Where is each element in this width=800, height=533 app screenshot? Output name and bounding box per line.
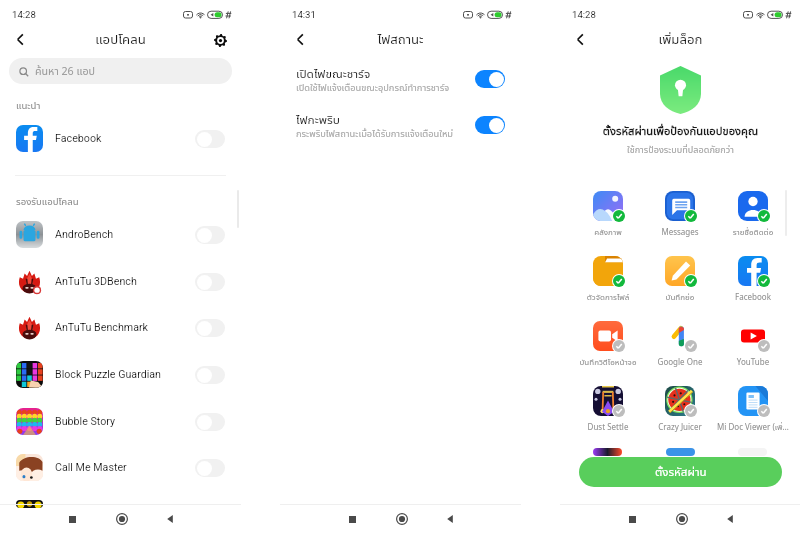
button[interactable]: เปิดไฟขณะชาร์จ — [280, 63, 521, 95]
button[interactable]: รายชื่อติดต่อ — [717, 191, 789, 237]
button[interactable]: Home — [106, 505, 138, 533]
button[interactable]: AndroBench — [0, 211, 241, 258]
button[interactable]: Recents — [336, 505, 368, 533]
staticText: 14:28 — [572, 9, 596, 20]
button[interactable]: Recents — [56, 505, 88, 533]
button[interactable]: Back — [566, 25, 594, 53]
staticText: ตั้งรหัสผ่านเพื่อป้องกันแอปของคุณ — [560, 123, 800, 138]
staticText: Facebook — [55, 132, 195, 145]
staticText: AnTuTu 3DBench — [55, 275, 195, 288]
staticText: Mi Doc Viewer (เพิ่มเ... — [717, 421, 789, 432]
button[interactable]: AnTuTu 3DBench — [0, 258, 241, 305]
button[interactable]: Mi Doc Viewer (เพิ่มเ... — [717, 386, 789, 432]
staticText: Dust Settle — [572, 421, 644, 432]
button[interactable]: AnTuTu Benchmark — [0, 304, 241, 351]
staticText: YouTube — [717, 356, 789, 367]
button[interactable] — [475, 70, 505, 88]
button[interactable] — [195, 366, 225, 384]
button[interactable]: ตั้งรหัสผ่าน — [579, 457, 782, 487]
button[interactable]: Bubble Story — [0, 398, 241, 445]
button[interactable]: Call Me Master — [0, 444, 241, 491]
staticText: บันทึกวิดีโอหน้าจอ — [572, 356, 644, 367]
button[interactable] — [195, 226, 225, 244]
button[interactable]: Back — [714, 505, 746, 533]
button[interactable] — [195, 413, 225, 431]
button[interactable]: Home — [666, 505, 698, 533]
button[interactable]: Facebook — [0, 115, 241, 162]
staticText: รายชื่อติดต่อ — [717, 226, 789, 237]
button[interactable]: ไฟกะพริบ — [280, 109, 521, 141]
button[interactable]: Crazy Juicer — [644, 386, 716, 432]
staticText: 14:28 — [12, 9, 36, 20]
button[interactable]: Back — [434, 505, 466, 533]
button[interactable] — [195, 459, 225, 477]
staticText: Crazy Juicer — [644, 421, 716, 432]
staticText: Facebook — [717, 291, 789, 302]
staticText: Call Me Master — [55, 461, 195, 474]
staticText: แนะนำ — [16, 99, 41, 112]
staticText: ไฟสถานะ — [280, 30, 521, 48]
button[interactable]: Dust Settle — [572, 386, 644, 432]
staticText: ไฟกะพริบ — [296, 111, 340, 127]
staticText: กระพริบไฟสถานะเมื่อได้รับการแจ้งเตือนใหม… — [296, 127, 454, 140]
staticText: Google One — [644, 356, 716, 367]
button[interactable]: คลังภาพ — [572, 191, 644, 237]
button[interactable]: ตัวจัดการไฟล์ — [572, 256, 644, 302]
staticText: ใช้การป้องระบบที่ปลอดภัยกว่า — [560, 143, 800, 155]
staticText: บันทึกย่อ — [644, 291, 716, 302]
staticText: AndroBench — [55, 228, 195, 241]
button[interactable] — [195, 319, 225, 337]
button[interactable]: ค้นหา 26 แอป — [9, 58, 232, 84]
staticText: คลังภาพ — [572, 226, 644, 237]
button[interactable]: Recents — [616, 505, 648, 533]
button[interactable] — [195, 130, 225, 148]
staticText: AnTuTu Benchmark — [55, 321, 195, 334]
button[interactable]: Facebook — [717, 256, 789, 302]
button[interactable]: Back — [6, 25, 34, 53]
staticText: Messages — [644, 226, 716, 237]
button[interactable]: Back — [154, 505, 186, 533]
button[interactable]: Home — [386, 505, 418, 533]
button[interactable] — [195, 273, 225, 291]
button[interactable]: บันทึกย่อ — [644, 256, 716, 302]
staticText: ตั้งรหัสผ่าน — [655, 464, 707, 480]
button[interactable]: Google One — [644, 321, 716, 367]
staticText: 14:31 — [292, 9, 316, 20]
staticText: ค้นหา 26 แอป — [35, 64, 96, 79]
staticText: รองรับแอปโคลน — [16, 195, 79, 208]
staticText: Block Puzzle Guardian — [55, 368, 195, 381]
button[interactable]: Settings — [206, 26, 234, 54]
button[interactable]: Back — [286, 25, 314, 53]
button[interactable]: Block Puzzle Guardian — [0, 351, 241, 398]
staticText: แอปโคลน — [0, 30, 241, 48]
staticText: Bubble Story — [55, 415, 195, 428]
button[interactable]: Messages — [644, 191, 716, 237]
staticText: เพิ่มล็อก — [560, 30, 800, 48]
button[interactable]: YouTube — [717, 321, 789, 367]
staticText: ตัวจัดการไฟล์ — [572, 291, 644, 302]
staticText: เปิดใช้ไฟแจ้งเตือนขณะอุปกรณ์ทำการชาร์จ — [296, 81, 450, 94]
button[interactable] — [475, 116, 505, 134]
staticText: เปิดไฟขณะชาร์จ — [296, 65, 371, 81]
button[interactable]: บันทึกวิดีโอหน้าจอ — [572, 321, 644, 367]
